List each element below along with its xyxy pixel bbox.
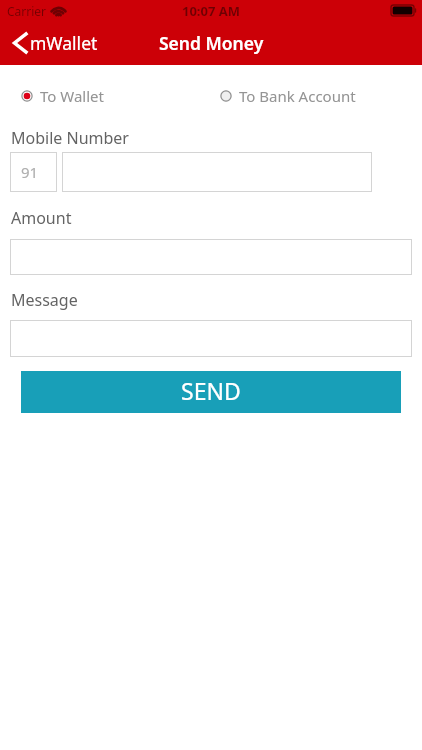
staticText: Mobile Number (11, 127, 129, 149)
button[interactable]: Back to mWallet (0, 27, 107, 59)
staticText: Carrier (7, 3, 47, 19)
staticText: mWallet (30, 31, 98, 55)
staticText: SEND (181, 375, 241, 406)
staticText: To Wallet (40, 86, 104, 104)
button[interactable]: SEND (21, 371, 401, 413)
button[interactable]: Amount input (10, 239, 412, 275)
button[interactable]: Country code 91 (10, 152, 57, 192)
button[interactable]: To Bank Account (219, 87, 356, 105)
staticText: 10:07 AM (182, 2, 241, 20)
button[interactable]: Mobile number input (62, 152, 372, 192)
button[interactable]: Message input (10, 320, 412, 357)
staticText: Amount (11, 207, 72, 229)
staticText: Message (11, 289, 78, 311)
staticText: 91 (21, 162, 39, 182)
button[interactable]: To Wallet (20, 87, 104, 105)
staticText: Send Money (159, 31, 264, 55)
staticText: To Bank Account (239, 86, 356, 104)
